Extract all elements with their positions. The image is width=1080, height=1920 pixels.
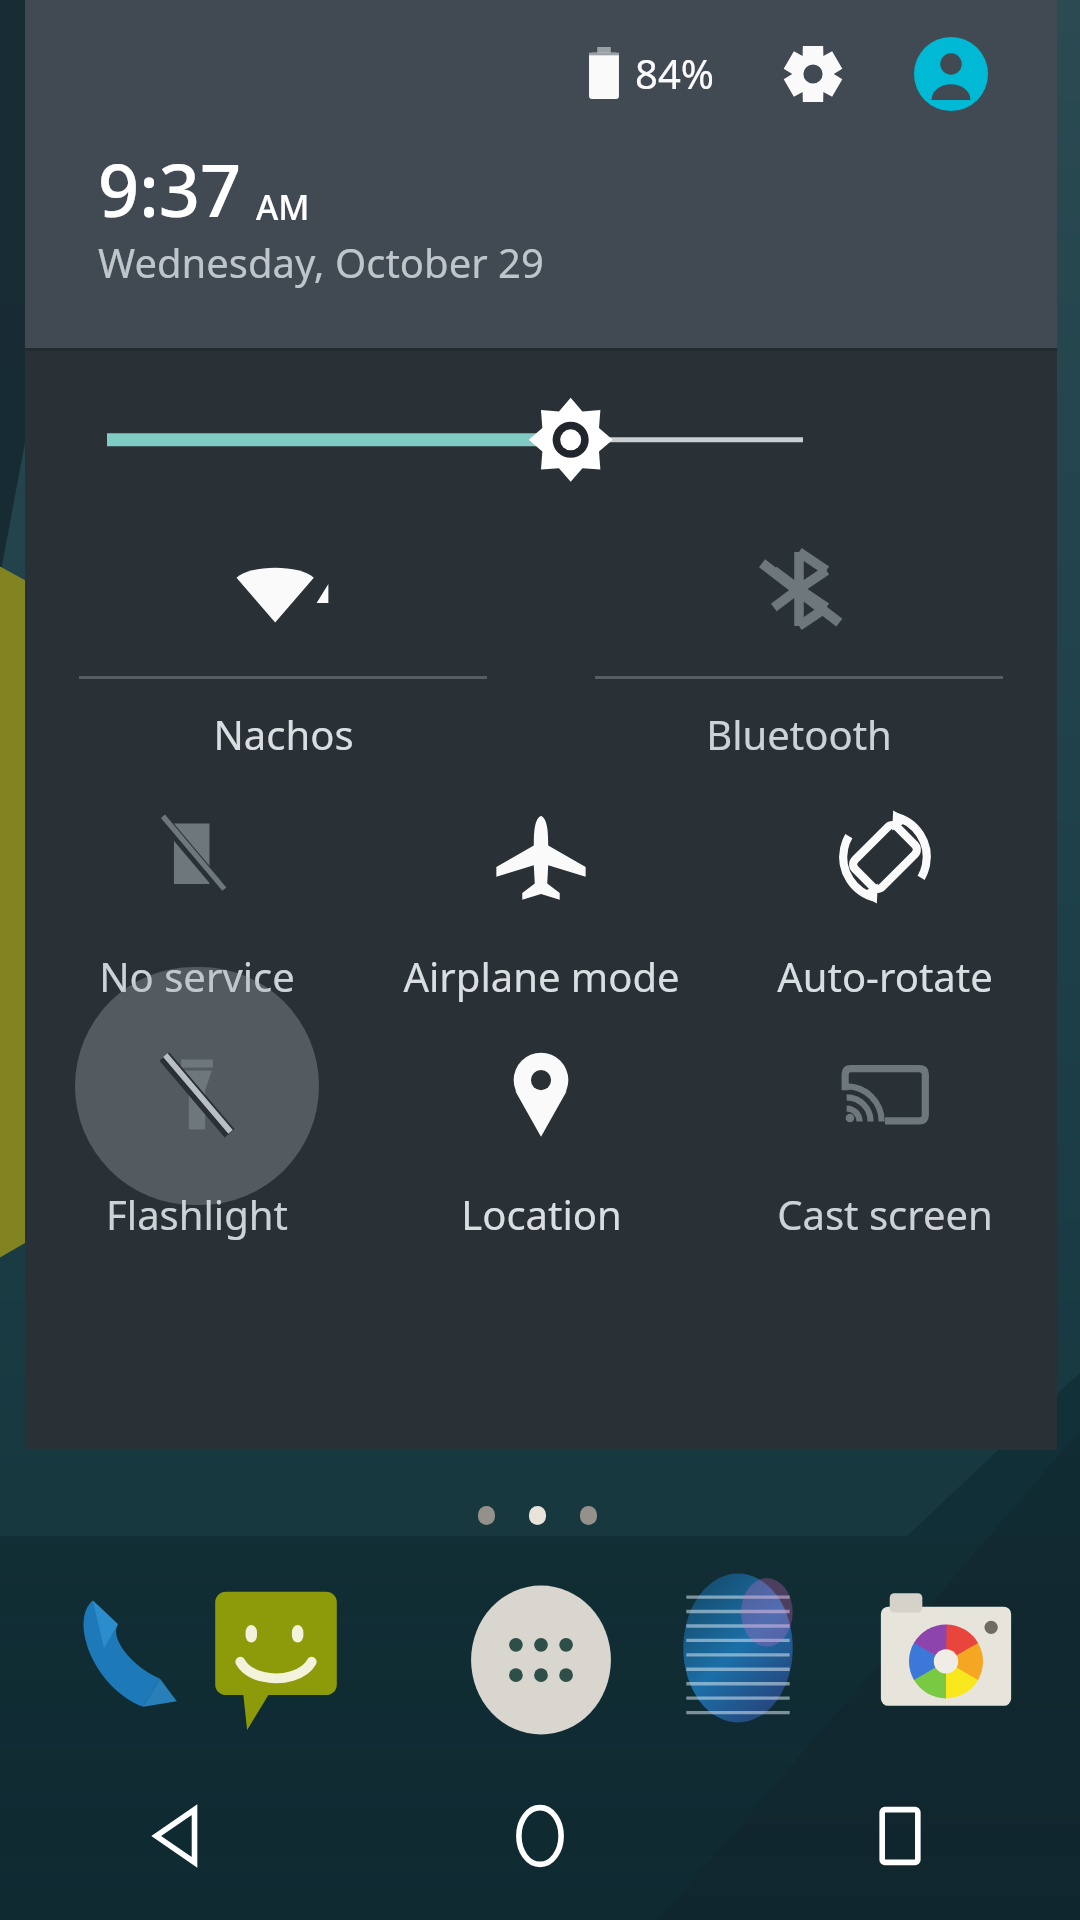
staticText: Location (461, 1187, 622, 1241)
button[interactable]: Recent apps (720, 1752, 1080, 1920)
button[interactable]: Back (0, 1752, 360, 1920)
button[interactable]: User (905, 28, 997, 120)
button[interactable]: Messaging (200, 1578, 352, 1730)
button[interactable]: Flashlight (25, 1019, 369, 1257)
staticText: Airplane mode (403, 949, 680, 1003)
button[interactable]: Location (369, 1019, 713, 1257)
staticText: Cast screen (777, 1187, 993, 1241)
button[interactable]: Browser (662, 1572, 814, 1724)
button[interactable]: No service (25, 781, 369, 1019)
staticText: No service (99, 949, 295, 1003)
staticText: Flashlight (106, 1187, 288, 1241)
button[interactable]: Camera (872, 1580, 1020, 1728)
button[interactable]: Cast screen (713, 1019, 1057, 1257)
button[interactable]: Home (360, 1752, 720, 1920)
button[interactable]: Brightness (25, 351, 1057, 511)
staticText: Nachos (213, 707, 354, 761)
staticText: 84% (635, 46, 714, 100)
button[interactable]: Bluetooth (541, 511, 1057, 781)
staticText: Wednesday, October 29 (98, 235, 544, 289)
button[interactable]: Auto-rotate (713, 781, 1057, 1019)
button[interactable]: Settings (767, 28, 859, 120)
staticText: AM (256, 184, 310, 230)
staticText: 9:37 (98, 140, 242, 238)
staticText: Auto-rotate (777, 949, 993, 1003)
button[interactable]: Airplane mode (369, 781, 713, 1019)
button[interactable]: Phone (62, 1578, 202, 1718)
staticText: Bluetooth (706, 707, 892, 761)
button[interactable]: All apps (465, 1584, 617, 1736)
button[interactable]: Nachos (25, 511, 541, 781)
